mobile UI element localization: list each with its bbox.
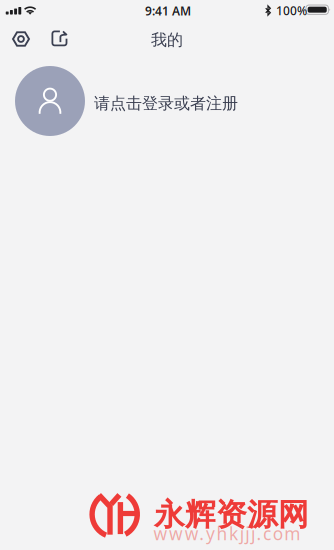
staticText: 我的 bbox=[151, 30, 183, 50]
button[interactable]: 请点击登录或者注册 bbox=[0, 56, 334, 146]
button[interactable]: Share bbox=[44, 22, 75, 55]
staticText: 100% bbox=[276, 3, 307, 18]
staticText: www.yhkjjj.com bbox=[153, 522, 300, 545]
staticText: 永辉资源网 bbox=[154, 496, 309, 534]
staticText: 9:41 AM bbox=[145, 3, 191, 19]
button[interactable]: Settings bbox=[5, 22, 37, 55]
staticText: 请点击登录或者注册 bbox=[94, 93, 238, 113]
